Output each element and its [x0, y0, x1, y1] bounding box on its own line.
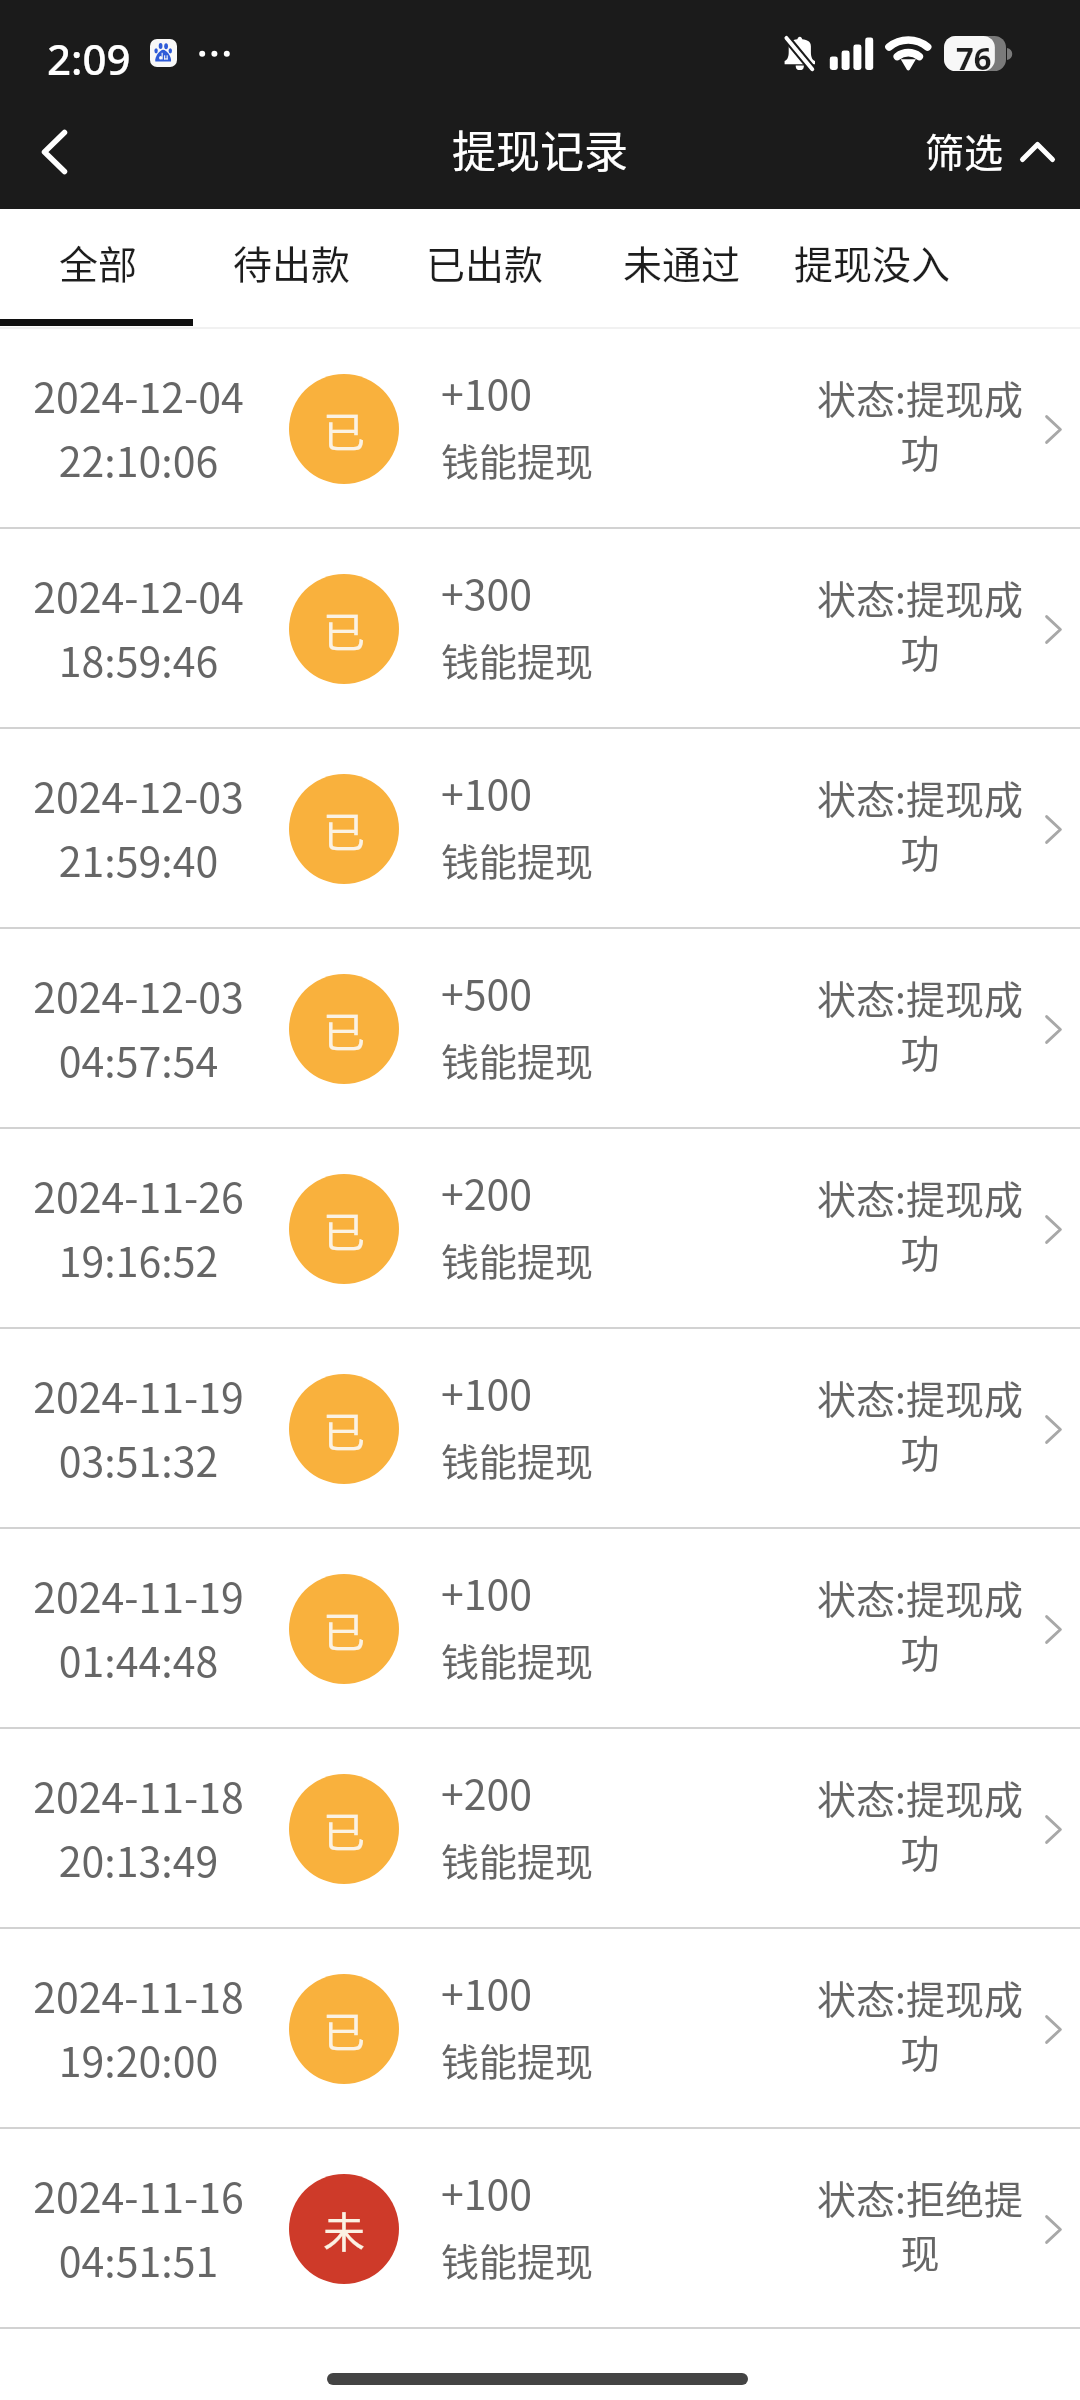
- staticText: +100: [441, 1962, 533, 2021]
- button[interactable]: 2024-11-19 03:51:32: [0, 1329, 1080, 1529]
- staticText: +500: [441, 962, 533, 1021]
- staticText: +100: [441, 762, 533, 821]
- staticText: 2024-12-04 22:10:06: [33, 365, 244, 489]
- button[interactable]: 2024-11-18 19:20:00: [0, 1929, 1080, 2129]
- button[interactable]: 2024-12-04 22:10:06: [0, 329, 1080, 529]
- staticText: 76: [956, 37, 992, 79]
- staticText: 已: [323, 1999, 366, 2060]
- button[interactable]: 提现没入: [778, 209, 966, 329]
- staticText: 钱能提现: [441, 1432, 594, 1487]
- staticText: 待出款: [233, 234, 351, 290]
- staticText: 钱能提现: [441, 1032, 594, 1087]
- staticText: 2024-12-04 18:59:46: [33, 565, 244, 689]
- staticText: +100: [441, 1562, 533, 1621]
- button[interactable]: 2024-12-04 18:59:46: [0, 529, 1080, 729]
- staticText: 筛选: [925, 122, 1004, 178]
- staticText: 状态:拒绝提现: [812, 2169, 1028, 2279]
- staticText: 状态:提现成功: [812, 1369, 1028, 1479]
- staticText: +200: [441, 1162, 533, 1221]
- staticText: 状态:提现成功: [812, 569, 1028, 679]
- staticText: 已: [323, 1599, 366, 1660]
- staticText: 2024-11-16 04:51:51: [33, 2165, 244, 2289]
- button[interactable]: 全部: [44, 209, 152, 329]
- button[interactable]: 2024-12-03 21:59:40: [0, 729, 1080, 929]
- staticText: 提现没入: [794, 234, 951, 290]
- staticText: 未通过: [623, 234, 741, 290]
- staticText: 未: [323, 2199, 366, 2260]
- button[interactable]: 2024-11-26 19:16:52: [0, 1129, 1080, 1329]
- staticText: +300: [441, 562, 533, 621]
- staticText: 已: [323, 399, 366, 460]
- staticText: 状态:提现成功: [812, 969, 1028, 1079]
- staticText: 状态:提现成功: [812, 1969, 1028, 2079]
- staticText: 状态:提现成功: [812, 1569, 1028, 1679]
- staticText: 钱能提现: [441, 1832, 594, 1887]
- staticText: 已: [323, 599, 366, 660]
- staticText: 状态:提现成功: [812, 1169, 1028, 1279]
- staticText: 已: [323, 999, 366, 1060]
- staticText: 2024-11-19 01:44:48: [33, 1565, 244, 1689]
- staticText: +200: [441, 1762, 533, 1821]
- staticText: 2024-11-18 19:20:00: [33, 1965, 244, 2089]
- staticText: 状态:提现成功: [812, 769, 1028, 879]
- button[interactable]: 筛选: [901, 97, 1080, 201]
- staticText: 2024-11-26 19:16:52: [33, 1165, 244, 1289]
- staticText: 已: [323, 1399, 366, 1460]
- staticText: 2024-11-19 03:51:32: [33, 1365, 244, 1489]
- staticText: +100: [441, 2162, 533, 2221]
- staticText: 已: [323, 799, 366, 860]
- button[interactable]: 待出款: [219, 209, 365, 329]
- staticText: +100: [441, 362, 533, 421]
- staticText: 钱能提现: [441, 832, 594, 887]
- staticText: 2024-12-03 04:57:54: [33, 965, 244, 1089]
- staticText: 钱能提现: [441, 632, 594, 687]
- button[interactable]: 已出款: [412, 209, 558, 329]
- button[interactable]: 2024-11-18 20:13:49: [0, 1729, 1080, 1929]
- staticText: 已: [323, 1799, 366, 1860]
- staticText: 钱能提现: [441, 432, 594, 487]
- button[interactable]: 2024-11-16 04:51:51: [0, 2129, 1080, 2329]
- staticText: 钱能提现: [441, 2032, 594, 2087]
- staticText: 钱能提现: [441, 1232, 594, 1287]
- button[interactable]: 未通过: [609, 209, 755, 329]
- staticText: 钱能提现: [441, 1632, 594, 1687]
- staticText: 全部: [59, 234, 138, 290]
- button[interactable]: Back: [9, 100, 99, 204]
- staticText: 2:09: [47, 30, 131, 87]
- staticText: 已出款: [426, 234, 544, 290]
- staticText: 钱能提现: [441, 2232, 594, 2287]
- staticText: 2024-12-03 21:59:40: [33, 765, 244, 889]
- button[interactable]: 2024-11-19 01:44:48: [0, 1529, 1080, 1729]
- staticText: 提现记录: [452, 117, 628, 181]
- button[interactable]: 2024-12-03 04:57:54: [0, 929, 1080, 1129]
- staticText: 已: [323, 1199, 366, 1260]
- staticText: 状态:提现成功: [812, 1769, 1028, 1879]
- staticText: 2024-11-18 20:13:49: [33, 1765, 244, 1889]
- staticText: 状态:提现成功: [812, 369, 1028, 479]
- staticText: +100: [441, 1362, 533, 1421]
